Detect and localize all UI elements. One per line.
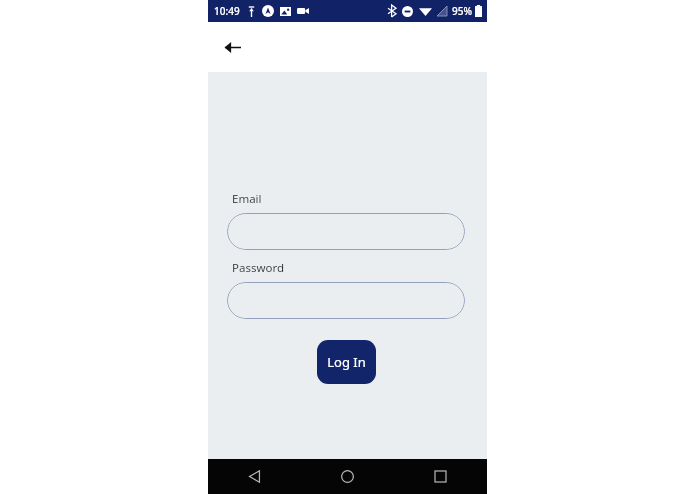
staticText: Log In [327, 353, 366, 371]
staticText: Email [232, 191, 262, 207]
staticText: Password [232, 260, 285, 276]
button[interactable]: Recent apps [394, 459, 487, 494]
staticText: 95% [452, 4, 472, 18]
button[interactable]: Home [301, 459, 394, 494]
button[interactable]: Text field [227, 213, 465, 250]
button[interactable]: Back [218, 33, 246, 61]
button[interactable]: Text field [227, 282, 465, 319]
button[interactable]: Back [208, 459, 301, 494]
staticText: 10:49 [214, 4, 240, 18]
button[interactable]: Log In [317, 340, 376, 384]
